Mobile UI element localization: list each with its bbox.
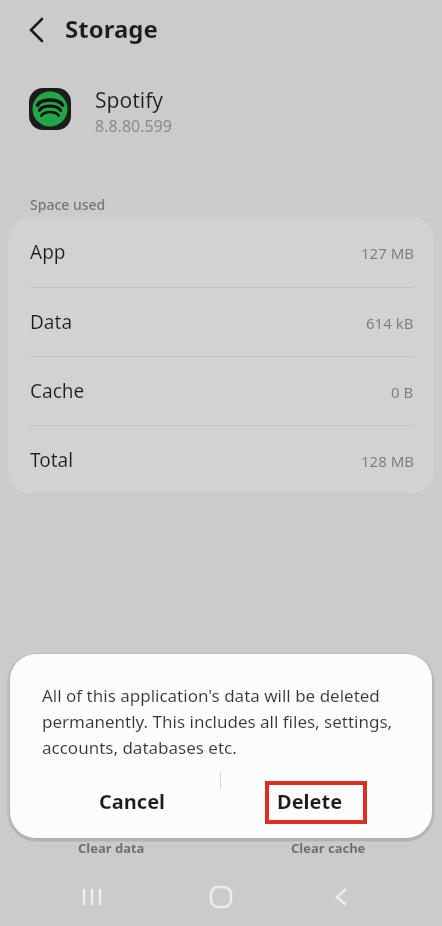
staticText: accounts, databases etc.: [42, 736, 237, 759]
staticText: Data: [30, 309, 73, 335]
staticText: Clear data: [78, 839, 145, 857]
staticText: Cache: [30, 378, 85, 404]
button[interactable]: [80, 882, 110, 912]
staticText: App: [30, 239, 66, 265]
button[interactable]: [18, 11, 56, 49]
button[interactable]: [8, 218, 434, 286]
staticText: Storage: [65, 12, 158, 45]
staticText: Spotify: [95, 86, 164, 115]
button[interactable]: Cancel: [77, 776, 187, 826]
button[interactable]: [8, 357, 434, 425]
staticText: Cancel: [99, 788, 166, 815]
staticText: Total: [30, 447, 74, 473]
button[interactable]: Delete: [255, 776, 365, 826]
staticText: Space used: [30, 195, 106, 214]
button[interactable]: [8, 426, 434, 494]
staticText: permanently. This includes all files, se…: [42, 710, 393, 733]
button[interactable]: [206, 882, 236, 912]
button[interactable]: [326, 882, 356, 912]
staticText: 8.8.80.599: [95, 115, 172, 137]
staticText: Clear cache: [291, 839, 366, 857]
staticText: 0 B: [391, 382, 414, 402]
staticText: 128 MB: [361, 451, 414, 471]
staticText: All of this application's data will be d…: [42, 684, 380, 707]
staticText: 127 MB: [361, 243, 414, 263]
staticText: 614 kB: [366, 313, 414, 333]
button[interactable]: [8, 288, 434, 356]
staticText: Delete: [277, 788, 343, 815]
